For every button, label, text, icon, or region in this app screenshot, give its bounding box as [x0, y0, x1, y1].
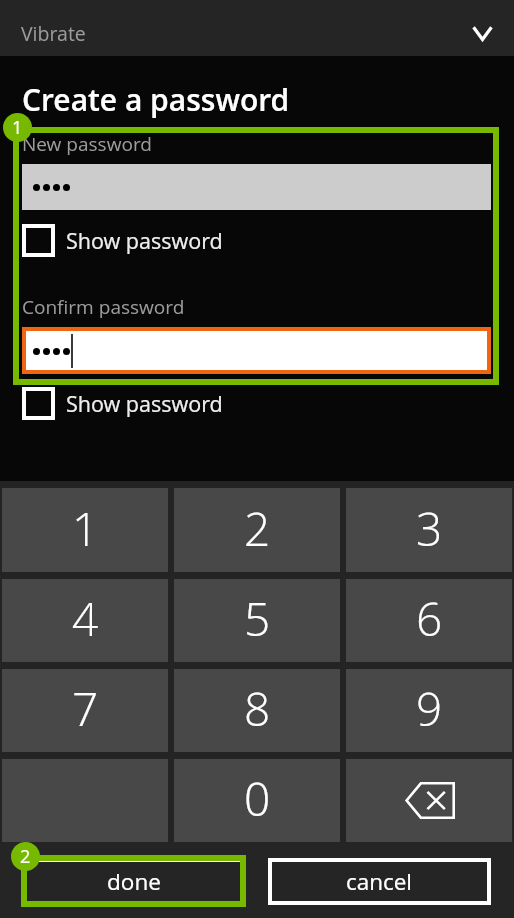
staticText: cancel	[346, 866, 413, 897]
button[interactable]: Collapse	[460, 12, 504, 56]
button[interactable]: cancel	[268, 858, 491, 905]
other: Backspace	[404, 782, 455, 819]
staticText: New password	[22, 131, 152, 157]
button[interactable]: Show password	[22, 385, 223, 421]
button[interactable]: 4	[2, 579, 168, 662]
staticText: Show password	[66, 389, 223, 418]
staticText: done	[107, 866, 161, 897]
staticText: 0	[244, 767, 271, 830]
button[interactable]	[22, 164, 491, 210]
button[interactable]: 0	[174, 759, 340, 842]
staticText: 6	[416, 587, 443, 650]
staticText: Confirm password	[22, 294, 185, 320]
staticText: 7	[72, 677, 99, 740]
button[interactable]: 7	[2, 669, 168, 752]
button[interactable]: Show password	[22, 222, 223, 258]
staticText: 9	[416, 677, 443, 740]
staticText: 5	[244, 587, 271, 650]
button[interactable]: 9	[346, 669, 512, 752]
button[interactable]: 2	[174, 488, 340, 572]
staticText: Show password	[66, 226, 223, 255]
staticText: 8	[244, 677, 271, 740]
staticText: 2	[20, 844, 31, 869]
button[interactable]: 1	[2, 488, 168, 572]
staticText: Create a password	[22, 79, 290, 120]
staticText: 4	[72, 587, 99, 650]
button[interactable]: Vibrate	[0, 0, 514, 56]
button[interactable]: 3	[346, 488, 512, 572]
button[interactable]: 5	[174, 579, 340, 662]
staticText: 1	[12, 115, 23, 140]
button[interactable]: 6	[346, 579, 512, 662]
button[interactable]: done	[22, 858, 246, 905]
button[interactable]	[22, 327, 491, 374]
button[interactable]: 8	[174, 669, 340, 752]
button[interactable]: Backspace	[346, 759, 512, 842]
staticText: Vibrate	[21, 20, 86, 47]
staticText: 3	[416, 497, 443, 560]
staticText: 2	[244, 497, 271, 560]
staticText: 1	[72, 497, 99, 560]
